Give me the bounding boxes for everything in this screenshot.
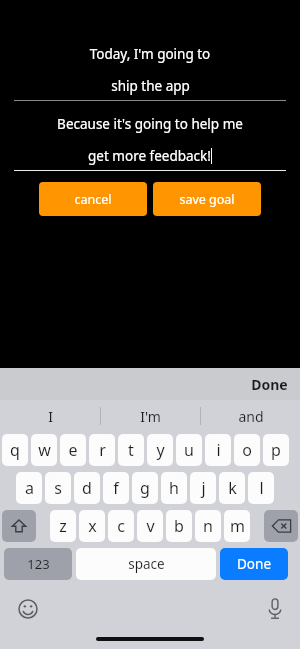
button[interactable]: i: [205, 434, 231, 466]
staticText: I: [48, 407, 53, 426]
button[interactable]: l: [248, 472, 274, 504]
button[interactable]: Done: [220, 548, 288, 580]
staticText: c: [117, 515, 125, 537]
button[interactable]: Voice input: [266, 598, 284, 620]
button[interactable]: Emoji: [18, 599, 38, 619]
staticText: g: [140, 477, 150, 499]
staticText: a: [25, 477, 34, 499]
button[interactable]: u: [176, 434, 202, 466]
button[interactable]: 123: [4, 548, 72, 580]
button[interactable]: m: [224, 510, 250, 542]
button[interactable]: z: [50, 510, 76, 542]
button[interactable]: a: [16, 472, 42, 504]
button[interactable]: cancel: [39, 182, 147, 216]
button[interactable]: v: [137, 510, 163, 542]
staticText: get more feedback!: [88, 147, 211, 165]
button[interactable]: o: [234, 434, 260, 466]
staticText: j: [201, 477, 206, 499]
staticText: r: [99, 439, 106, 461]
button[interactable]: h: [161, 472, 187, 504]
button[interactable]: and: [201, 400, 300, 432]
staticText: u: [184, 439, 194, 461]
button[interactable]: Backspace: [264, 510, 298, 542]
staticText: t: [128, 439, 134, 461]
button[interactable]: x: [79, 510, 105, 542]
staticText: 123: [27, 555, 50, 573]
button[interactable]: w: [31, 434, 57, 466]
staticText: space: [128, 555, 165, 573]
staticText: save goal: [179, 191, 235, 208]
staticText: v: [146, 515, 155, 537]
staticText: n: [203, 515, 213, 537]
staticText: Today, I'm going to: [14, 45, 286, 63]
staticText: p: [271, 439, 281, 461]
button[interactable]: e: [60, 434, 86, 466]
staticText: q: [10, 439, 20, 461]
button[interactable]: j: [190, 472, 216, 504]
staticText: ship the app: [111, 77, 190, 95]
staticText: l: [259, 477, 264, 499]
staticText: f: [113, 477, 119, 499]
button[interactable]: save goal: [153, 182, 261, 216]
button[interactable]: g: [132, 472, 158, 504]
staticText: Done: [251, 375, 288, 394]
button[interactable]: I: [0, 400, 100, 432]
button[interactable]: n: [195, 510, 221, 542]
staticText: e: [68, 439, 78, 461]
button[interactable]: Shift: [2, 510, 36, 542]
button[interactable]: s: [45, 472, 71, 504]
staticText: I'm: [140, 407, 161, 426]
staticText: d: [82, 477, 92, 499]
staticText: k: [228, 477, 237, 499]
staticText: Done: [237, 555, 271, 573]
button[interactable]: q: [2, 434, 28, 466]
button[interactable]: y: [147, 434, 173, 466]
button[interactable]: space: [76, 548, 216, 580]
staticText: x: [88, 515, 97, 537]
button[interactable]: k: [219, 472, 245, 504]
staticText: s: [54, 477, 62, 499]
staticText: y: [156, 439, 165, 461]
button[interactable]: d: [74, 472, 100, 504]
staticText: i: [216, 439, 221, 461]
staticText: z: [59, 515, 67, 537]
staticText: w: [38, 439, 51, 461]
button[interactable]: f: [103, 472, 129, 504]
button[interactable]: b: [166, 510, 192, 542]
button[interactable]: p: [263, 434, 289, 466]
button[interactable]: t: [118, 434, 144, 466]
button[interactable]: Done: [251, 375, 288, 394]
staticText: Because it's going to help me: [14, 115, 286, 133]
staticText: o: [242, 439, 252, 461]
staticText: m: [230, 515, 245, 537]
staticText: and: [238, 407, 264, 426]
button[interactable]: r: [89, 434, 115, 466]
button[interactable]: I'm: [101, 400, 200, 432]
staticText: cancel: [74, 191, 112, 208]
button[interactable]: c: [108, 510, 134, 542]
staticText: h: [169, 477, 179, 499]
staticText: b: [174, 515, 184, 537]
